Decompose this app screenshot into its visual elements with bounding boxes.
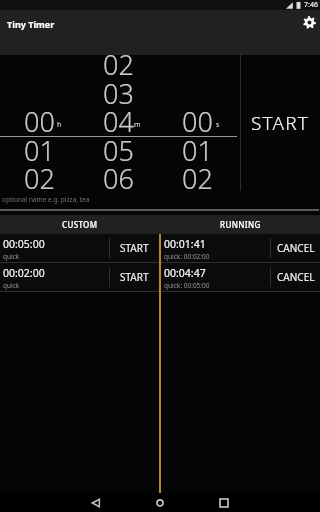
button[interactable]: CUSTOM xyxy=(0,215,160,234)
button[interactable]: RUNNING xyxy=(160,215,320,234)
staticText: CANCEL xyxy=(277,270,315,284)
button[interactable]: CANCEL xyxy=(271,263,320,291)
button[interactable]: 00:02:00 xyxy=(0,263,159,291)
staticText: Tiny Timer xyxy=(7,18,55,30)
staticText: quick: 00:05:00 xyxy=(164,281,210,290)
button[interactable]: 00 xyxy=(158,55,237,191)
staticText: 00:01:41 xyxy=(164,237,206,251)
staticText: 03 xyxy=(103,75,134,104)
staticText: quick xyxy=(3,281,20,290)
staticText: START xyxy=(251,110,310,136)
staticText: 05 xyxy=(103,132,134,161)
staticText: 01 xyxy=(182,132,213,161)
button[interactable]: CANCEL xyxy=(271,234,320,262)
button[interactable]: Back xyxy=(80,493,112,512)
staticText: 00:02:00 xyxy=(3,266,45,280)
button[interactable]: START xyxy=(241,55,320,191)
button[interactable]: Settings xyxy=(299,12,320,33)
button[interactable]: 00:05:00 xyxy=(0,234,159,262)
staticText: CUSTOM xyxy=(62,219,98,230)
staticText: 02 xyxy=(24,160,55,189)
staticText: quick: 00:02:00 xyxy=(164,252,210,261)
staticText: 04 xyxy=(103,103,134,132)
staticText: CANCEL xyxy=(277,241,315,255)
staticText: 00 xyxy=(182,103,213,132)
staticText: m xyxy=(134,120,141,130)
staticText: quick xyxy=(3,252,20,261)
staticText: s xyxy=(216,120,220,130)
button[interactable]: 01 xyxy=(79,55,158,191)
staticText: 02 xyxy=(182,160,213,189)
staticText: 00:04:47 xyxy=(164,266,206,280)
staticText: 02 xyxy=(103,55,134,75)
staticText: h xyxy=(57,120,62,130)
staticText: 7:46 xyxy=(304,0,318,10)
staticText: 00:05:00 xyxy=(3,237,45,251)
button[interactable]: Home xyxy=(144,493,176,512)
button[interactable]: 00:01:41 xyxy=(161,234,320,262)
button[interactable]: START xyxy=(110,234,159,262)
staticText: 01 xyxy=(24,132,55,161)
button[interactable]: 00 xyxy=(0,55,79,191)
button[interactable]: 00:04:47 xyxy=(161,263,320,291)
staticText: 06 xyxy=(103,160,134,189)
staticText: RUNNING xyxy=(220,219,261,230)
staticText: optional name e.g. pizza, tea xyxy=(2,195,90,204)
staticText: START xyxy=(120,241,149,255)
button[interactable]: START xyxy=(110,263,159,291)
staticText: 00 xyxy=(24,103,55,132)
button[interactable]: Recents xyxy=(208,493,240,512)
staticText: START xyxy=(120,270,149,284)
